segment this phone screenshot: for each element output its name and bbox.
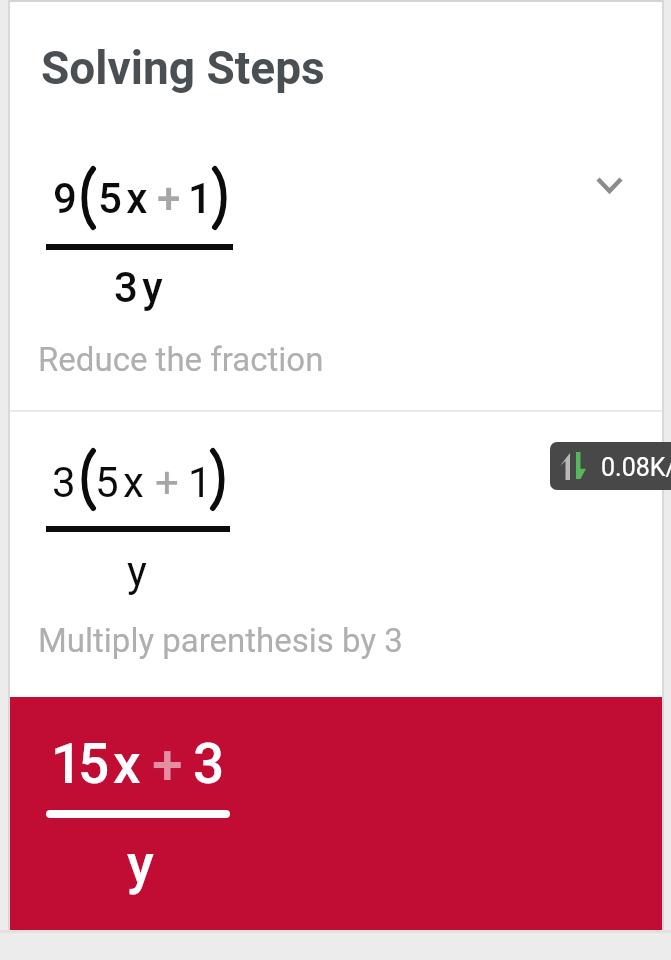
staticText: y [127,547,147,596]
staticText: 0.08K/s [601,453,671,482]
staticText: Reduce the fraction [38,340,324,379]
staticText: + [157,174,181,223]
staticText: 5 x [95,458,144,507]
staticText: + [155,458,179,507]
staticText: 3 [193,732,225,796]
staticText: Solving Steps [41,41,325,95]
button[interactable]: 9 [10,128,662,410]
button[interactable]: Collapse step [572,147,647,222]
staticText: 9 [53,174,77,223]
staticText: x [113,732,141,796]
staticText: 1 [188,458,212,507]
staticText: 5 [78,732,110,796]
button[interactable]: 3 [10,411,662,697]
staticText: 3 y [114,263,163,312]
staticText: 1 [51,732,83,796]
staticText: 1 [188,174,212,223]
staticText: + [152,733,183,797]
button[interactable]: 1 [10,697,662,930]
staticText: Multiply parenthesis by 3 [38,621,403,660]
other: Network speed [550,442,671,490]
staticText: 3 [52,458,76,507]
staticText: y [127,832,154,896]
staticText: 5 x [98,174,148,223]
